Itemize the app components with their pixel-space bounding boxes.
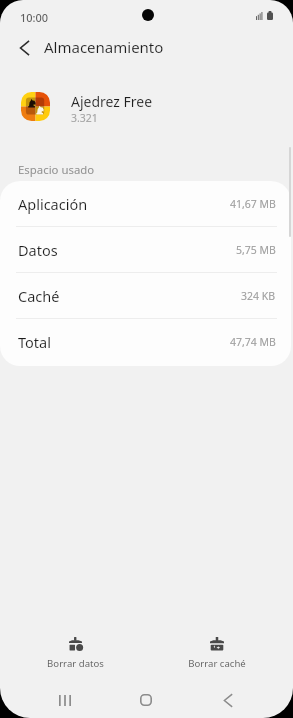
button[interactable]: Borrar datos xyxy=(5,637,146,670)
staticText: Espacio usado xyxy=(18,162,95,178)
staticText: Caché xyxy=(18,286,60,306)
staticText: Aplicación xyxy=(18,194,88,214)
button[interactable]: Aplicación xyxy=(0,181,291,227)
button[interactable]: Total xyxy=(0,319,291,365)
staticText: 10:00 xyxy=(20,10,49,25)
staticText: 324 KB xyxy=(241,289,276,303)
staticText: 3.321 xyxy=(71,111,98,125)
staticText: Almacenamiento xyxy=(44,37,164,57)
staticText: 5,75 MB xyxy=(236,243,276,257)
staticText: Borrar datos xyxy=(47,657,104,670)
button[interactable]: Home xyxy=(105,682,187,718)
button[interactable]: Datos xyxy=(0,227,291,273)
staticText: Total xyxy=(18,332,51,352)
button[interactable]: Recent apps xyxy=(24,682,105,718)
button[interactable]: Back xyxy=(9,33,39,63)
button[interactable]: Back xyxy=(187,682,269,718)
staticText: Datos xyxy=(18,240,58,260)
button[interactable]: Borrar caché xyxy=(146,637,288,670)
staticText: Ajedrez Free xyxy=(71,92,153,111)
button[interactable]: Caché xyxy=(0,273,291,319)
staticText: 41,67 MB xyxy=(230,197,276,211)
staticText: 47,74 MB xyxy=(230,335,276,349)
staticText: Borrar caché xyxy=(188,657,246,670)
